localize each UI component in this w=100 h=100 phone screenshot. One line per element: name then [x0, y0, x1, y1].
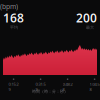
staticText: 最大: [86, 25, 94, 30]
staticText: 0:31:59: [36, 81, 46, 92]
staticText: 1:04:58: [90, 81, 100, 92]
staticText: 200: [76, 10, 97, 26]
staticText: 168: [3, 10, 24, 26]
staticText: 0:15:29: [9, 81, 19, 92]
staticText: 心拍数(bpm): [0, 2, 18, 11]
staticText: 平均: [10, 25, 18, 30]
staticText: 0:48:28: [63, 81, 73, 92]
staticText: 時間（時：分：秒）: [32, 89, 68, 94]
